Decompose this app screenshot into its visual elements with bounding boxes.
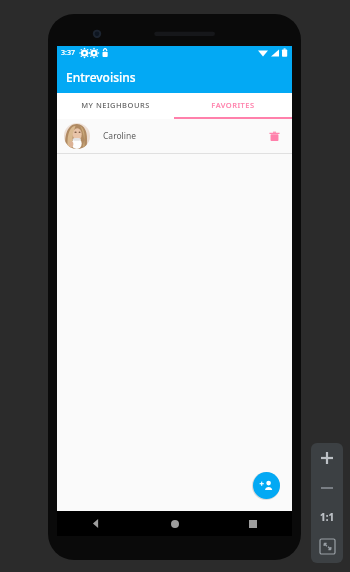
button[interactable]: Remove from favorites <box>263 125 285 147</box>
staticText: Caroline <box>103 130 137 142</box>
staticText: 1:1 <box>320 510 335 524</box>
button[interactable]: Back <box>57 511 136 536</box>
button[interactable]: FAVORITES <box>174 93 292 117</box>
button[interactable]: Zoom in <box>311 443 343 473</box>
staticText: 3:37 <box>61 48 75 58</box>
staticText: MY NEIGHBOURS <box>81 100 150 110</box>
button[interactable]: 1:1 <box>311 503 343 531</box>
button[interactable]: MY NEIGHBOURS <box>57 93 174 117</box>
staticText: Entrevoisins <box>66 69 136 85</box>
button[interactable]: Add neighbour <box>253 472 280 499</box>
staticText: FAVORITES <box>211 100 255 110</box>
button[interactable]: Recent apps <box>214 511 292 536</box>
button[interactable]: Home <box>136 511 214 536</box>
button[interactable]: Caroline <box>57 119 292 153</box>
button[interactable]: Zoom out <box>311 473 343 503</box>
button[interactable]: Fit to screen <box>311 531 343 561</box>
button[interactable]: Entrevoisins <box>57 60 292 93</box>
